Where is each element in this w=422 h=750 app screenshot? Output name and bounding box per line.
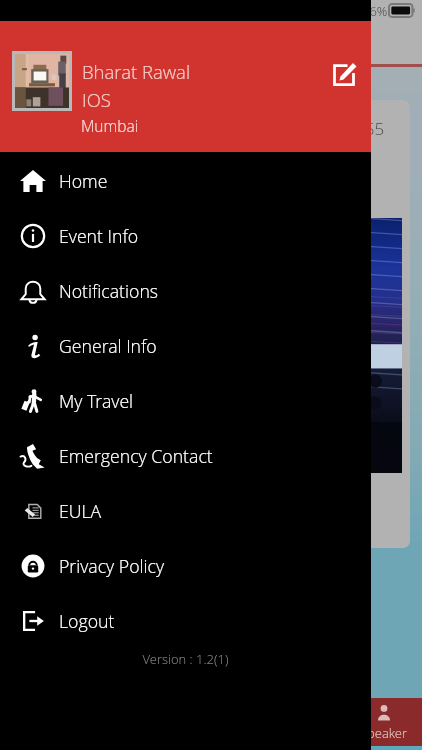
button[interactable]: Emergency Contact <box>0 428 371 483</box>
staticText: Mumbai <box>81 115 139 136</box>
button[interactable]: Home <box>0 153 371 208</box>
staticText: IOS <box>82 87 111 112</box>
staticText: Logout <box>59 609 115 633</box>
staticText: Notifications <box>59 279 159 303</box>
staticText: Version : 1.2(1) <box>0 650 371 668</box>
staticText: Event Info <box>59 224 139 248</box>
staticText: Opening 5:55 <box>277 117 385 140</box>
staticText: Bharat Rawal <box>82 59 191 84</box>
button[interactable]: Event Info <box>0 208 371 263</box>
staticText: Speaker <box>360 724 408 742</box>
staticText: 86% <box>362 2 388 20</box>
button[interactable]: Notifications <box>0 263 371 318</box>
button[interactable]: Edit profile <box>328 58 360 90</box>
button[interactable]: Logout <box>0 593 371 648</box>
button[interactable]: General Info <box>0 318 371 373</box>
staticText: General Info <box>59 334 157 358</box>
staticText: Home <box>59 169 108 193</box>
staticText: My Travel <box>59 389 134 413</box>
button[interactable]: EULA <box>0 483 371 538</box>
staticText: Emergency Contact <box>59 444 213 468</box>
button[interactable]: Bharat Rawal <box>0 21 371 152</box>
staticText: Privacy Policy <box>59 554 165 578</box>
button[interactable]: My Travel <box>0 373 371 428</box>
staticText: EULA <box>59 499 102 523</box>
button[interactable]: Privacy Policy <box>0 538 371 593</box>
